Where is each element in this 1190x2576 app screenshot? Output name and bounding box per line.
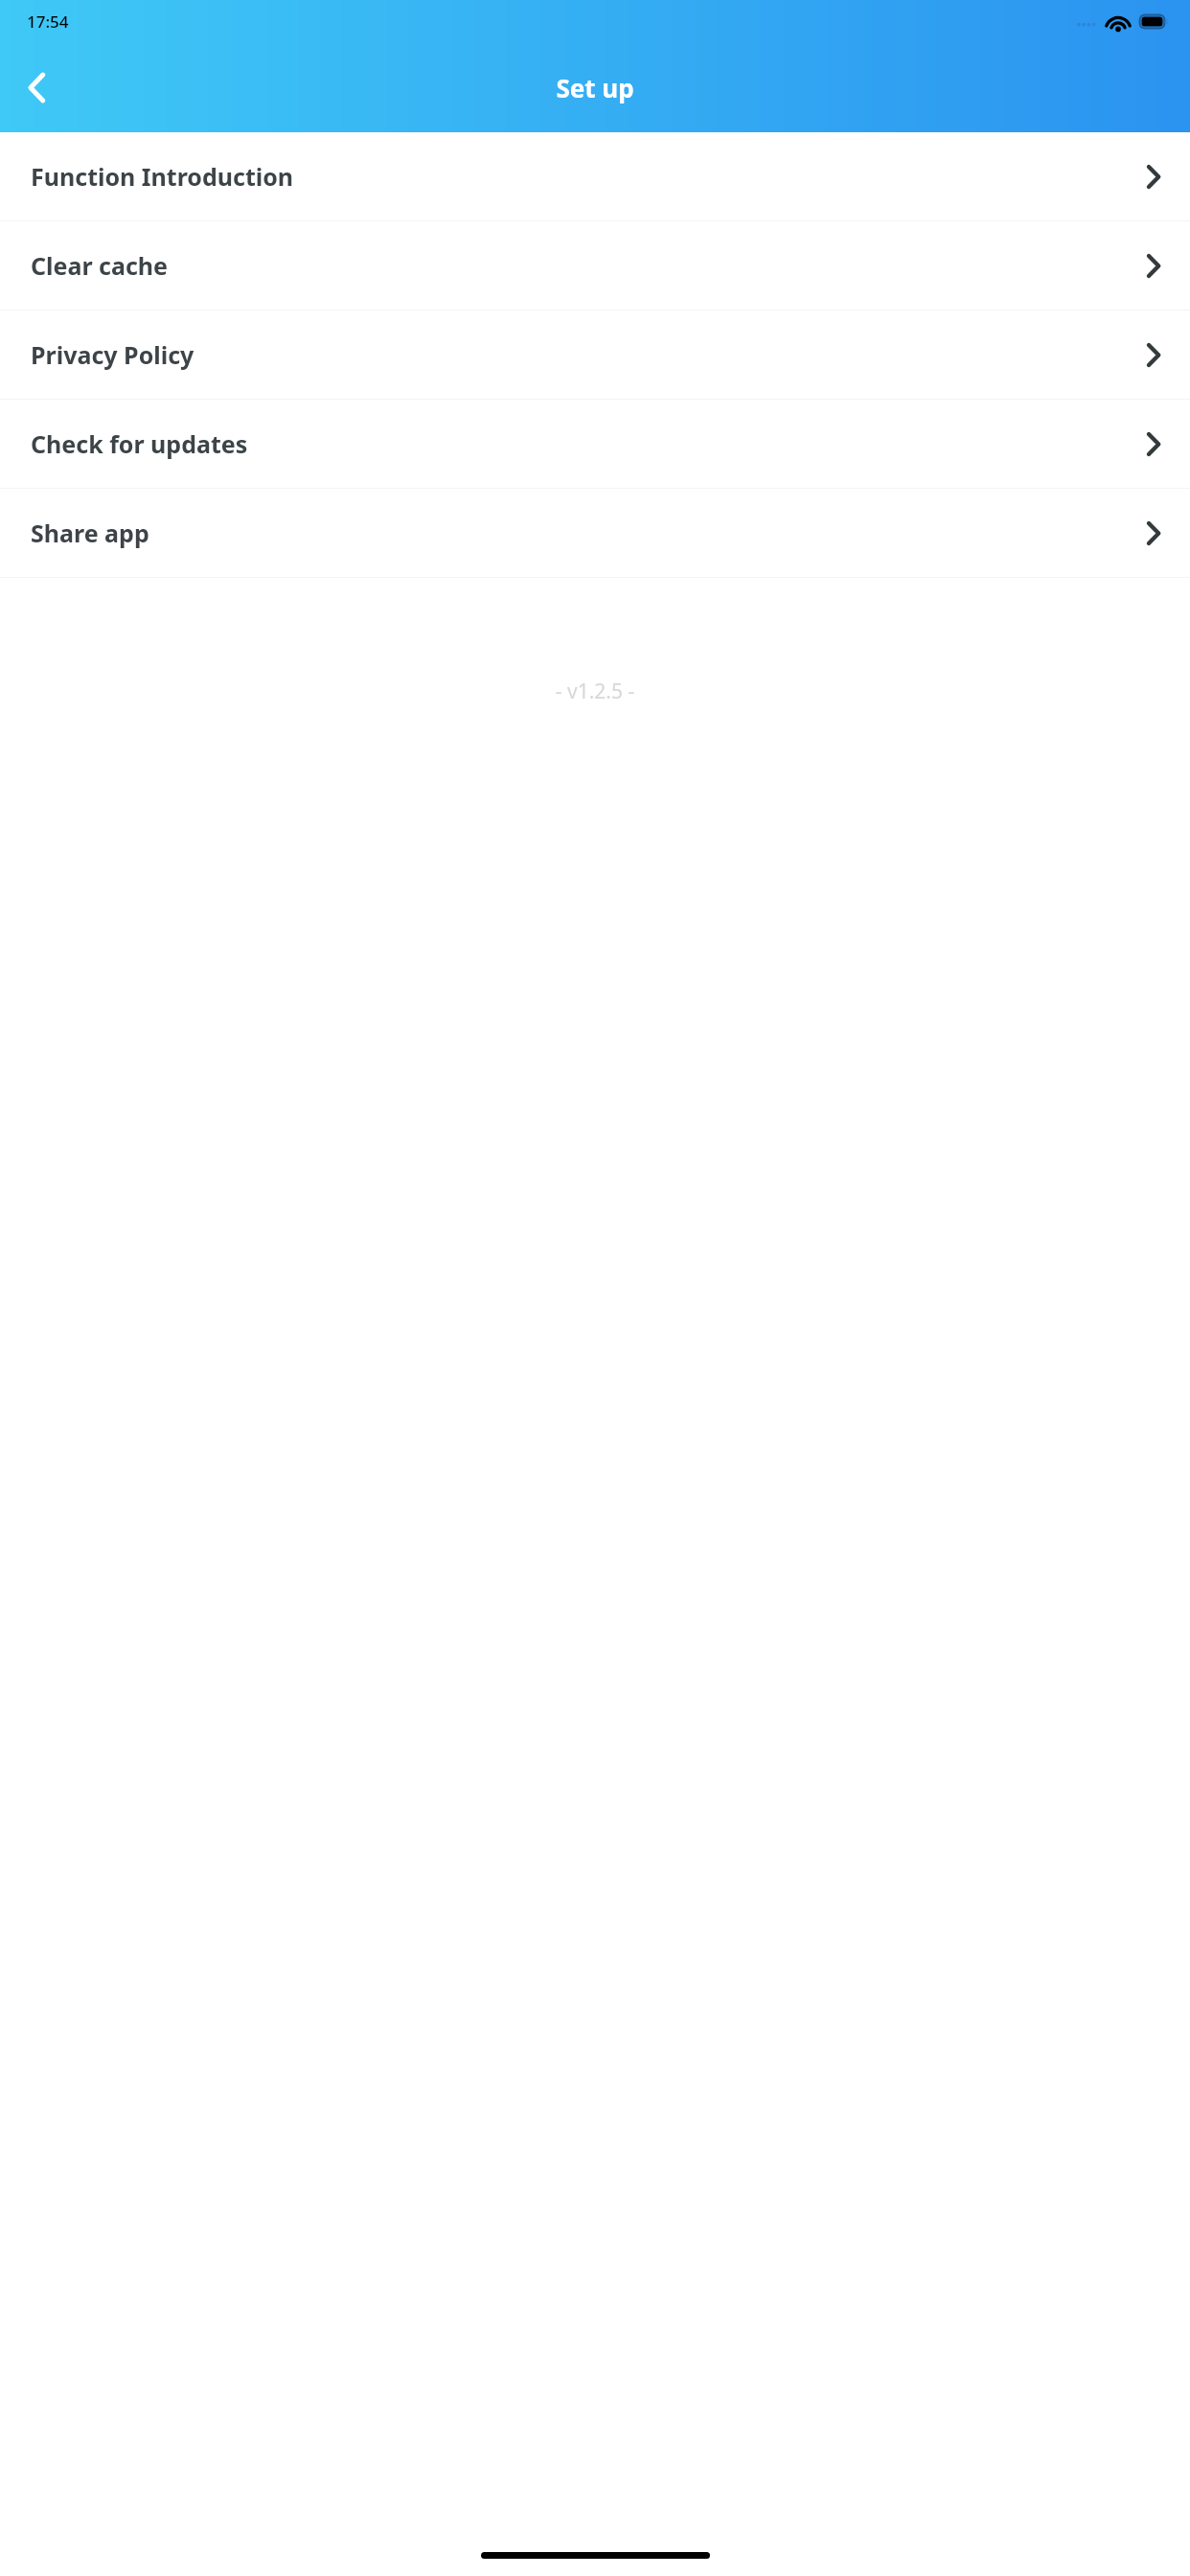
button[interactable]: Check for updates (0, 400, 1190, 488)
staticText: Clear cache (31, 249, 1148, 282)
button[interactable]: Share app (0, 489, 1190, 577)
button[interactable]: Function Introduction (0, 132, 1190, 220)
staticText: Set up (556, 71, 634, 104)
button[interactable]: Privacy Policy (0, 310, 1190, 399)
button[interactable]: Back (0, 51, 73, 124)
staticText: Privacy Policy (31, 338, 1148, 371)
staticText: Function Introduction (31, 160, 1148, 193)
staticText: - v1.2.5 - (0, 678, 1190, 705)
staticText: Check for updates (31, 427, 1148, 460)
button[interactable]: Clear cache (0, 221, 1190, 310)
staticText: Share app (31, 517, 1148, 549)
staticText: 17:54 (27, 11, 69, 33)
